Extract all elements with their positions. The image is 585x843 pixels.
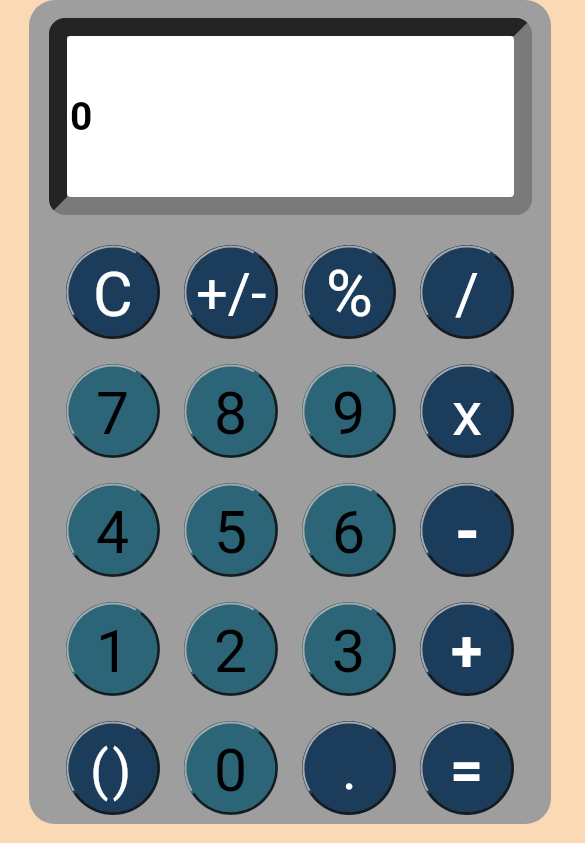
staticText: 7 [96,379,130,448]
staticText: - [455,495,480,570]
button[interactable]: 8 [184,364,278,458]
button[interactable]: 6 [302,483,396,577]
button[interactable]: 0 [184,721,278,815]
button[interactable]: / [420,245,514,339]
staticText: 3 [332,617,366,686]
staticText: + [451,618,483,685]
button[interactable]: 3 [302,602,396,696]
staticText: C [93,259,133,330]
button[interactable]: C [66,245,160,339]
button[interactable]: = [420,721,514,815]
staticText: = [450,736,484,804]
staticText: 9 [332,379,366,448]
staticText: 2 [214,617,248,686]
staticText: () [90,739,136,802]
button[interactable]: - [420,483,514,577]
staticText: 4 [96,498,130,567]
staticText: 0 [70,94,93,140]
staticText: . [342,737,357,803]
staticText: 8 [214,379,248,448]
staticText: +/- [196,261,267,327]
staticText: 5 [214,498,248,567]
button[interactable]: 2 [184,602,278,696]
button[interactable]: 9 [302,364,396,458]
staticText: % [326,257,373,332]
button[interactable]: % [302,245,396,339]
button[interactable]: 5 [184,483,278,577]
button[interactable]: () [66,721,160,815]
button[interactable]: x [420,364,514,458]
button[interactable]: 1 [66,602,160,696]
staticText: 1 [96,617,130,686]
staticText: / [455,260,479,328]
staticText: 0 [214,736,248,805]
staticText: 6 [332,498,366,567]
button[interactable]: 4 [66,483,160,577]
button[interactable]: . [302,721,396,815]
button[interactable]: +/- [184,245,278,339]
staticText: x [452,378,483,449]
button[interactable]: + [420,602,514,696]
button[interactable]: 7 [66,364,160,458]
